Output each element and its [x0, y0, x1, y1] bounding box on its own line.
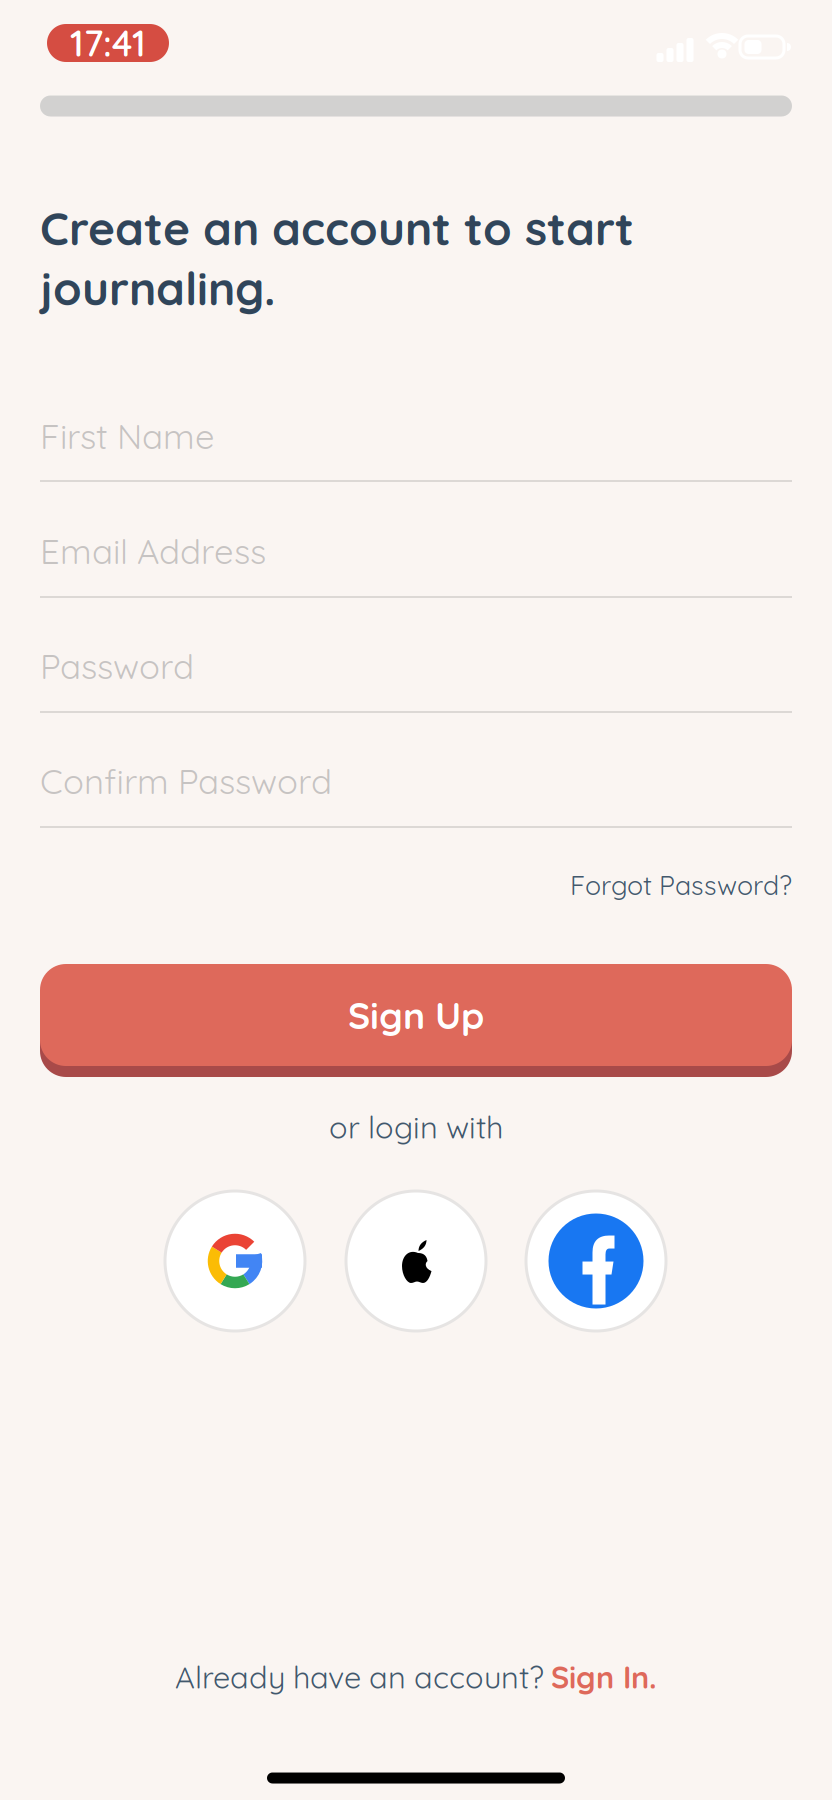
- staticText: journaling.: [40, 259, 275, 317]
- staticText: Sign In.: [551, 1658, 657, 1696]
- staticText: Confirm Password: [40, 759, 332, 803]
- staticText: Forgot Password?: [570, 868, 792, 902]
- staticText: 17:41: [70, 20, 146, 65]
- staticText: Create an account to start: [40, 199, 634, 257]
- staticText: or login with: [329, 1108, 503, 1146]
- staticText: Already have an account?: [175, 1658, 544, 1696]
- staticText: Password: [40, 644, 194, 688]
- staticText: Sign Up: [348, 992, 484, 1038]
- staticText: Email Address: [40, 529, 266, 573]
- button[interactable]: Sign in with Google: [165, 1191, 305, 1331]
- button[interactable]: Sign in with Facebook: [526, 1191, 666, 1331]
- button[interactable]: Sign in with Apple: [346, 1191, 486, 1331]
- button[interactable]: Sign Up: [40, 958, 792, 1071]
- button[interactable]: Forgot Password?: [40, 868, 792, 902]
- button[interactable]: Already have an account?: [175, 1658, 657, 1696]
- staticText: First Name: [40, 414, 215, 458]
